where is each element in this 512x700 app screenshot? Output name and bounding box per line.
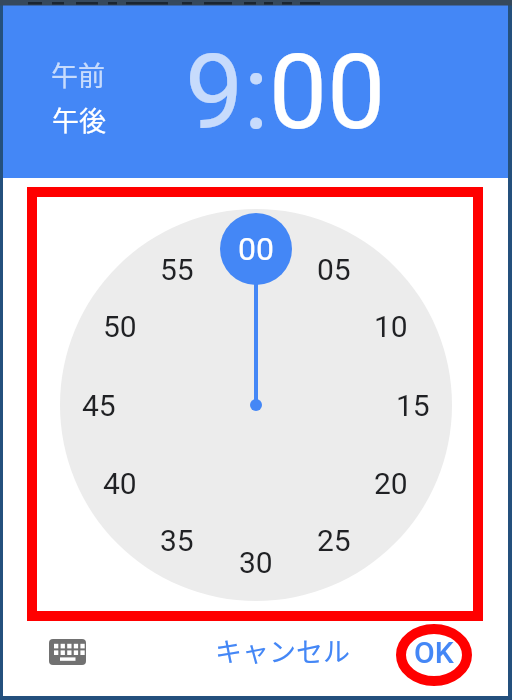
staticText: キャンセル	[215, 631, 350, 670]
button[interactable]: 45	[69, 383, 129, 427]
button[interactable]: 05	[304, 247, 364, 291]
button[interactable]	[43, 633, 92, 671]
staticText: 05	[317, 252, 351, 287]
button[interactable]: 00	[220, 213, 292, 285]
button[interactable]: 50	[90, 304, 150, 348]
button[interactable]: 25	[304, 518, 364, 562]
staticText: 20	[374, 466, 408, 501]
button[interactable]: キャンセル	[197, 628, 367, 672]
staticText: 9:00	[185, 32, 386, 154]
staticText: 10	[374, 309, 408, 344]
button[interactable]: 30	[226, 540, 286, 584]
staticText: 30	[239, 545, 273, 580]
staticText: 午後	[52, 100, 106, 139]
staticText: 40	[103, 466, 137, 501]
button[interactable]: 15	[383, 383, 443, 427]
button[interactable]: 20	[361, 461, 421, 505]
button[interactable]: 55	[147, 247, 207, 291]
button[interactable]: OK	[394, 630, 474, 674]
staticText: 45	[82, 388, 116, 423]
staticText: 55	[160, 252, 194, 287]
button[interactable]: 40	[90, 461, 150, 505]
staticText: 25	[317, 523, 351, 558]
staticText: OK	[414, 635, 454, 670]
button[interactable]: 35	[147, 518, 207, 562]
button[interactable]: 10	[361, 304, 421, 348]
staticText: 00	[238, 230, 274, 268]
button[interactable]: 午後	[29, 99, 129, 139]
staticText: 15	[396, 388, 430, 423]
staticText: 50	[103, 309, 137, 344]
staticText: 午前	[51, 55, 105, 94]
button[interactable]: 午前	[28, 54, 128, 94]
staticText: 35	[160, 523, 194, 558]
